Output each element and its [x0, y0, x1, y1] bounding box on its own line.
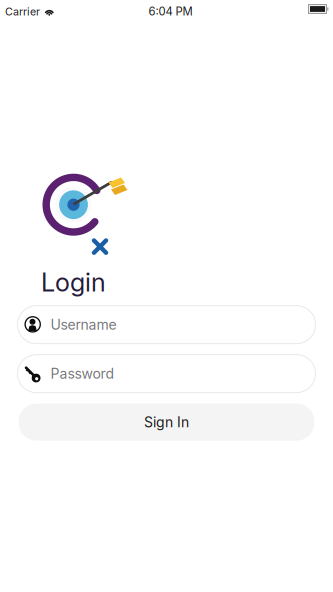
staticText: Password [50, 365, 114, 382]
button[interactable]: Username [17, 306, 315, 344]
staticText: Username [50, 316, 116, 333]
staticText: Sign In [144, 414, 189, 431]
button[interactable]: Sign In [18, 404, 314, 441]
staticText: 6:04 PM [149, 5, 193, 18]
staticText: Carrier [5, 5, 40, 18]
staticText: Login [41, 267, 106, 298]
button[interactable]: Password [17, 355, 315, 393]
